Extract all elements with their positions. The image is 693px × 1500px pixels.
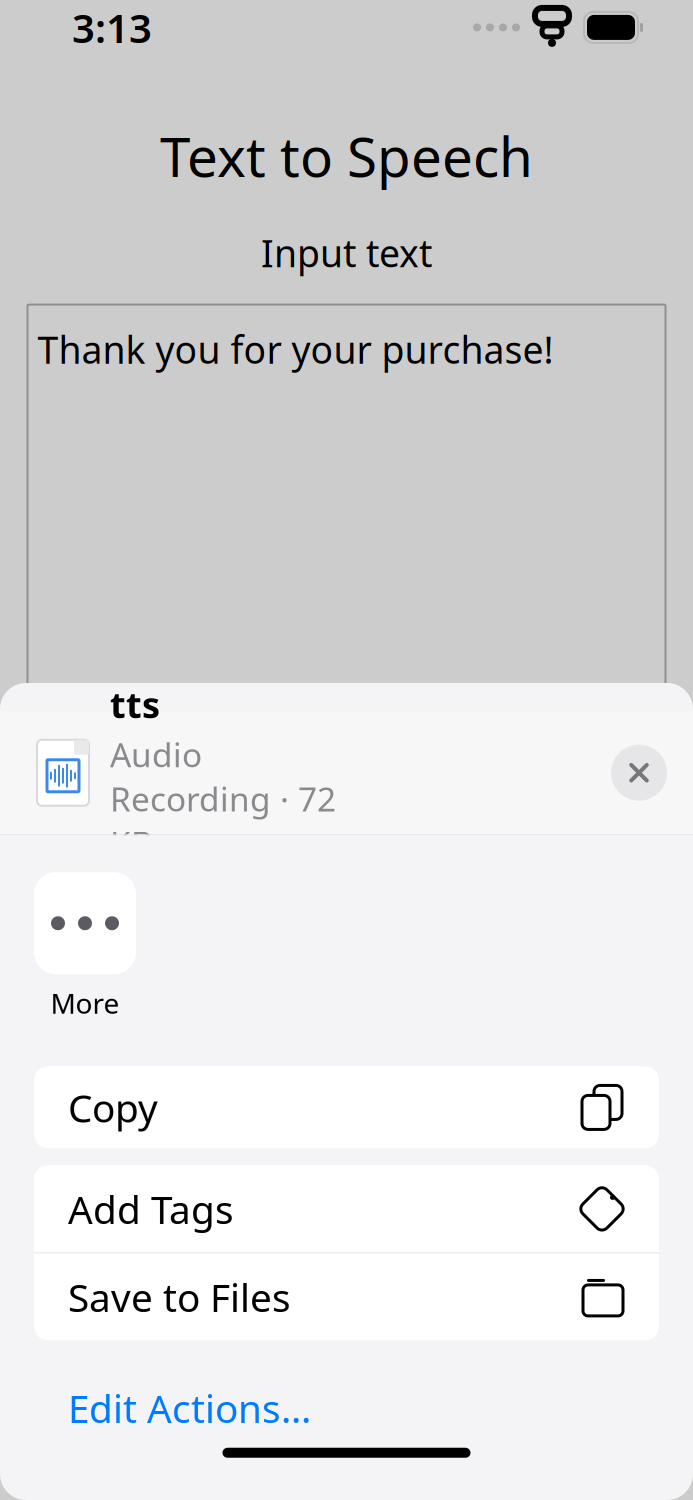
button[interactable]: Copy xyxy=(34,1066,659,1148)
staticText: Edit Actions... xyxy=(68,1382,311,1434)
staticText: More xyxy=(50,984,119,1021)
staticText: Copy xyxy=(68,1082,158,1133)
staticText: 3:13 xyxy=(72,1,152,54)
staticText: Text to Speech xyxy=(160,119,533,192)
staticText: tts xyxy=(110,680,160,728)
button[interactable]: Edit Actions... xyxy=(68,1368,311,1448)
staticText: Audio Recording · 72 KB xyxy=(110,732,336,865)
button[interactable]: More xyxy=(27,872,143,1021)
button[interactable]: Close xyxy=(611,745,667,801)
button[interactable]: Add Tags xyxy=(34,1165,659,1252)
staticText: Save to Files xyxy=(68,1271,291,1322)
staticText: Add Tags xyxy=(68,1183,234,1234)
staticText: Thank you for your purchase! xyxy=(37,325,553,374)
staticText: Input text xyxy=(261,228,432,278)
button[interactable]: Save to Files xyxy=(34,1253,659,1340)
